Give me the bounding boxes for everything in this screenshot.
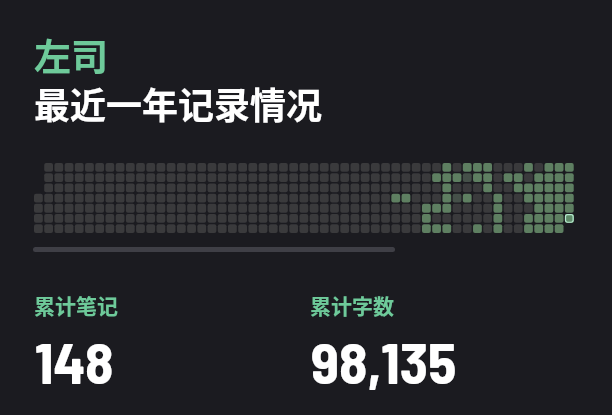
staticText: 98,135 xyxy=(311,326,457,396)
staticText: 累计字数 xyxy=(310,290,394,320)
staticText: 累计笔记 xyxy=(34,290,118,320)
button[interactable]: Contribution heat map xyxy=(34,163,575,234)
staticText: 最近一年记录情况 xyxy=(34,77,323,129)
staticText: 左司 xyxy=(34,28,108,82)
staticText: 148 xyxy=(35,326,114,396)
